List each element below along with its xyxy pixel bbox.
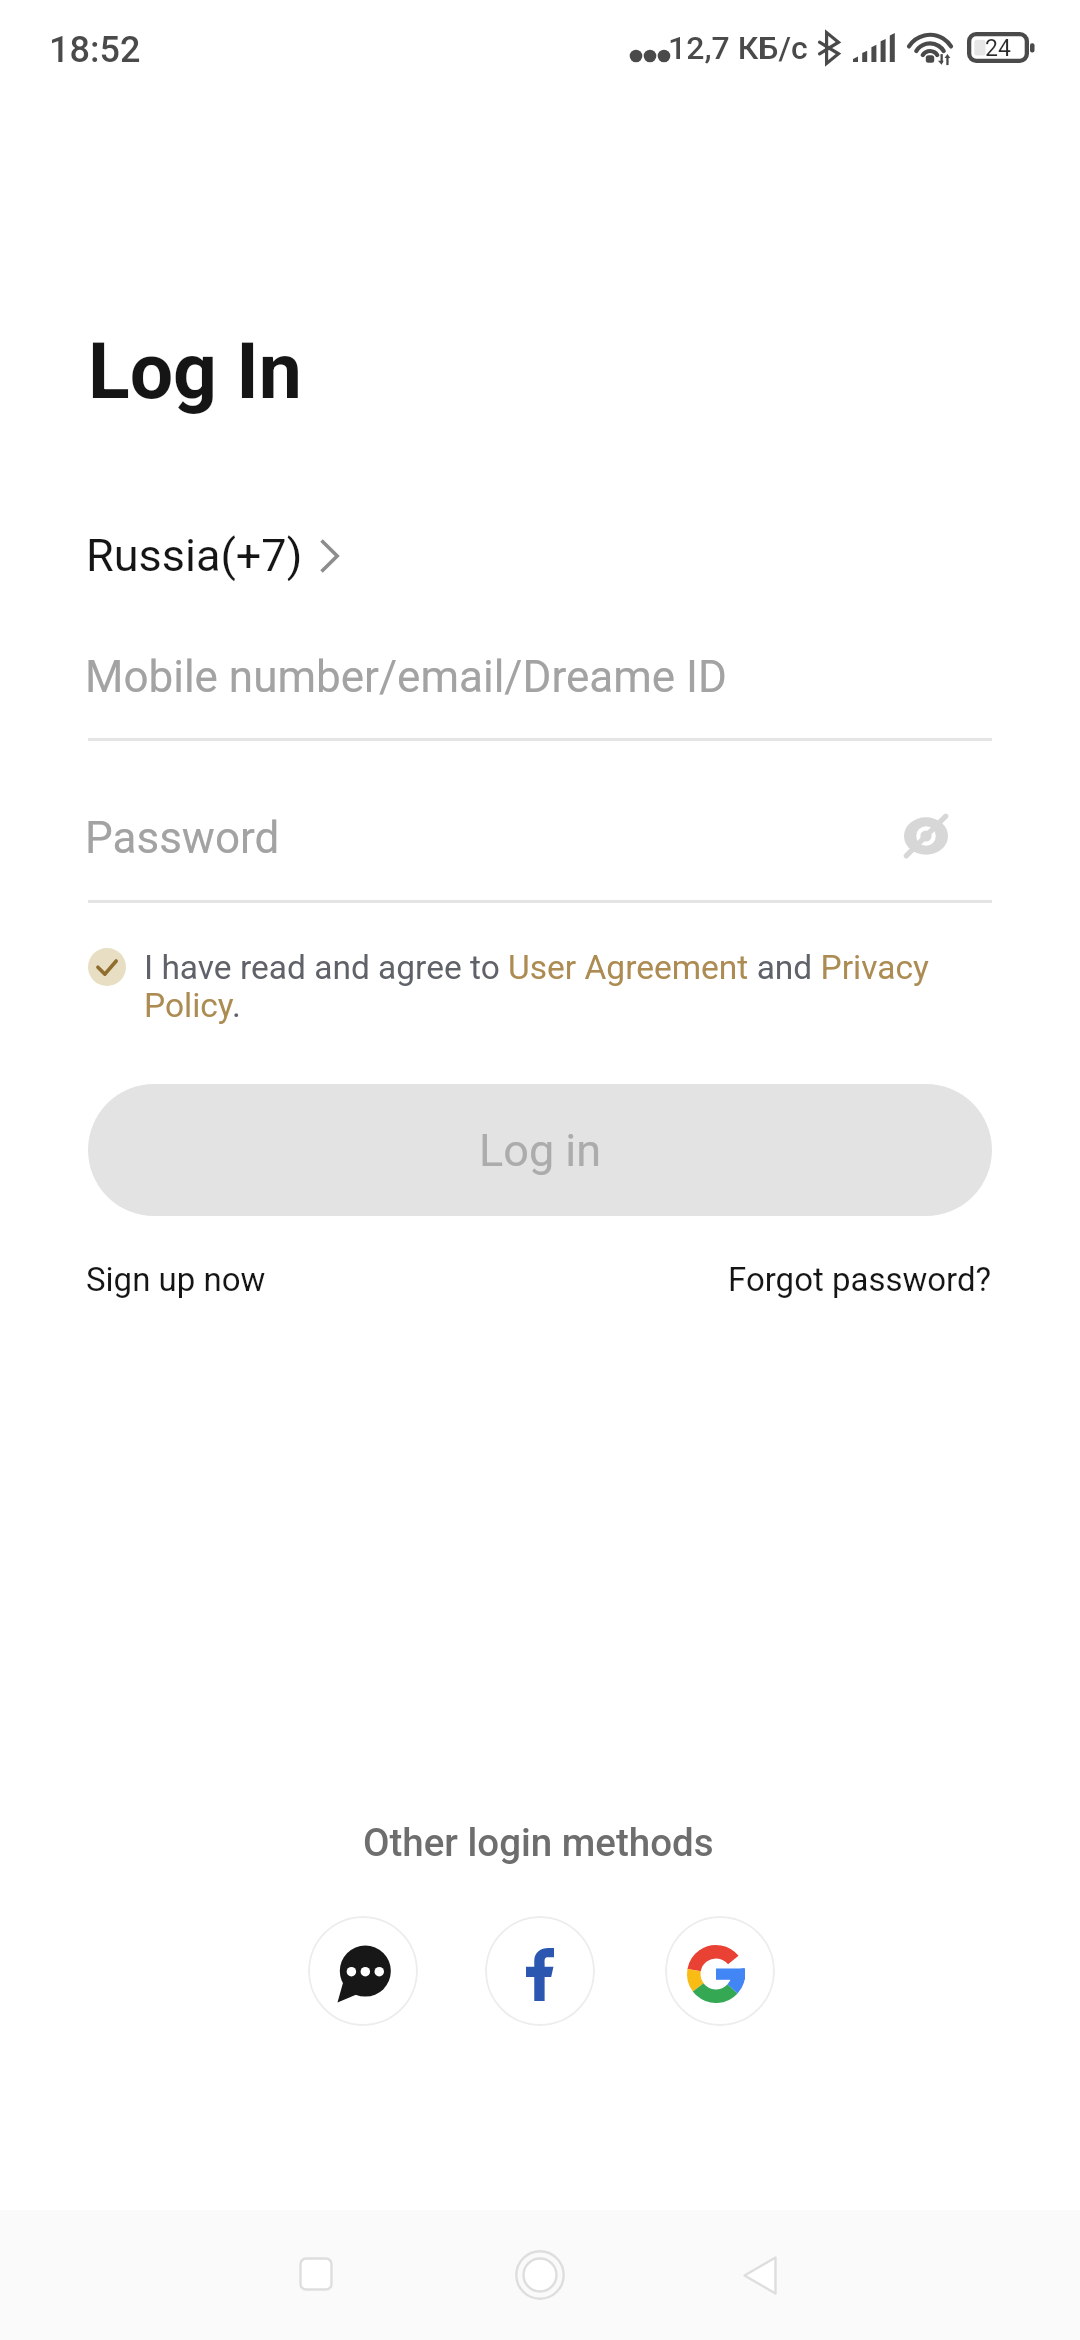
button[interactable]: Chat login xyxy=(308,1916,418,2026)
staticText: Password xyxy=(85,812,280,864)
button[interactable]: Home xyxy=(480,2215,600,2335)
staticText: Log In xyxy=(88,327,302,417)
staticText: Russia(+7) xyxy=(86,529,303,582)
staticText: 12,7 КБ/с xyxy=(668,29,808,67)
staticText: Sign up now xyxy=(86,1260,266,1299)
button[interactable]: Recent apps xyxy=(256,2214,376,2334)
button[interactable]: Log in xyxy=(88,1084,992,1216)
button[interactable]: Back xyxy=(700,2215,820,2335)
button[interactable]: Russia(+7) xyxy=(86,529,353,582)
staticText: Mobile number/email/Dreame ID xyxy=(85,651,727,703)
button[interactable]: I have read and agree to User Agreement … xyxy=(144,948,984,1025)
button[interactable]: Agree to terms checkbox xyxy=(88,948,126,986)
staticText: 24 xyxy=(985,35,1011,62)
button[interactable]: Google login xyxy=(665,1916,775,2026)
staticText: 18:52 xyxy=(49,29,141,71)
button[interactable]: Forgot password? xyxy=(720,1247,992,1311)
button[interactable]: Show password xyxy=(880,790,972,882)
staticText: Other login methods xyxy=(363,1820,714,1865)
button[interactable]: Facebook login xyxy=(485,1916,595,2026)
staticText: Forgot password? xyxy=(728,1260,992,1299)
staticText: Log in xyxy=(479,1124,602,1177)
button[interactable]: Sign up now xyxy=(86,1246,266,1310)
